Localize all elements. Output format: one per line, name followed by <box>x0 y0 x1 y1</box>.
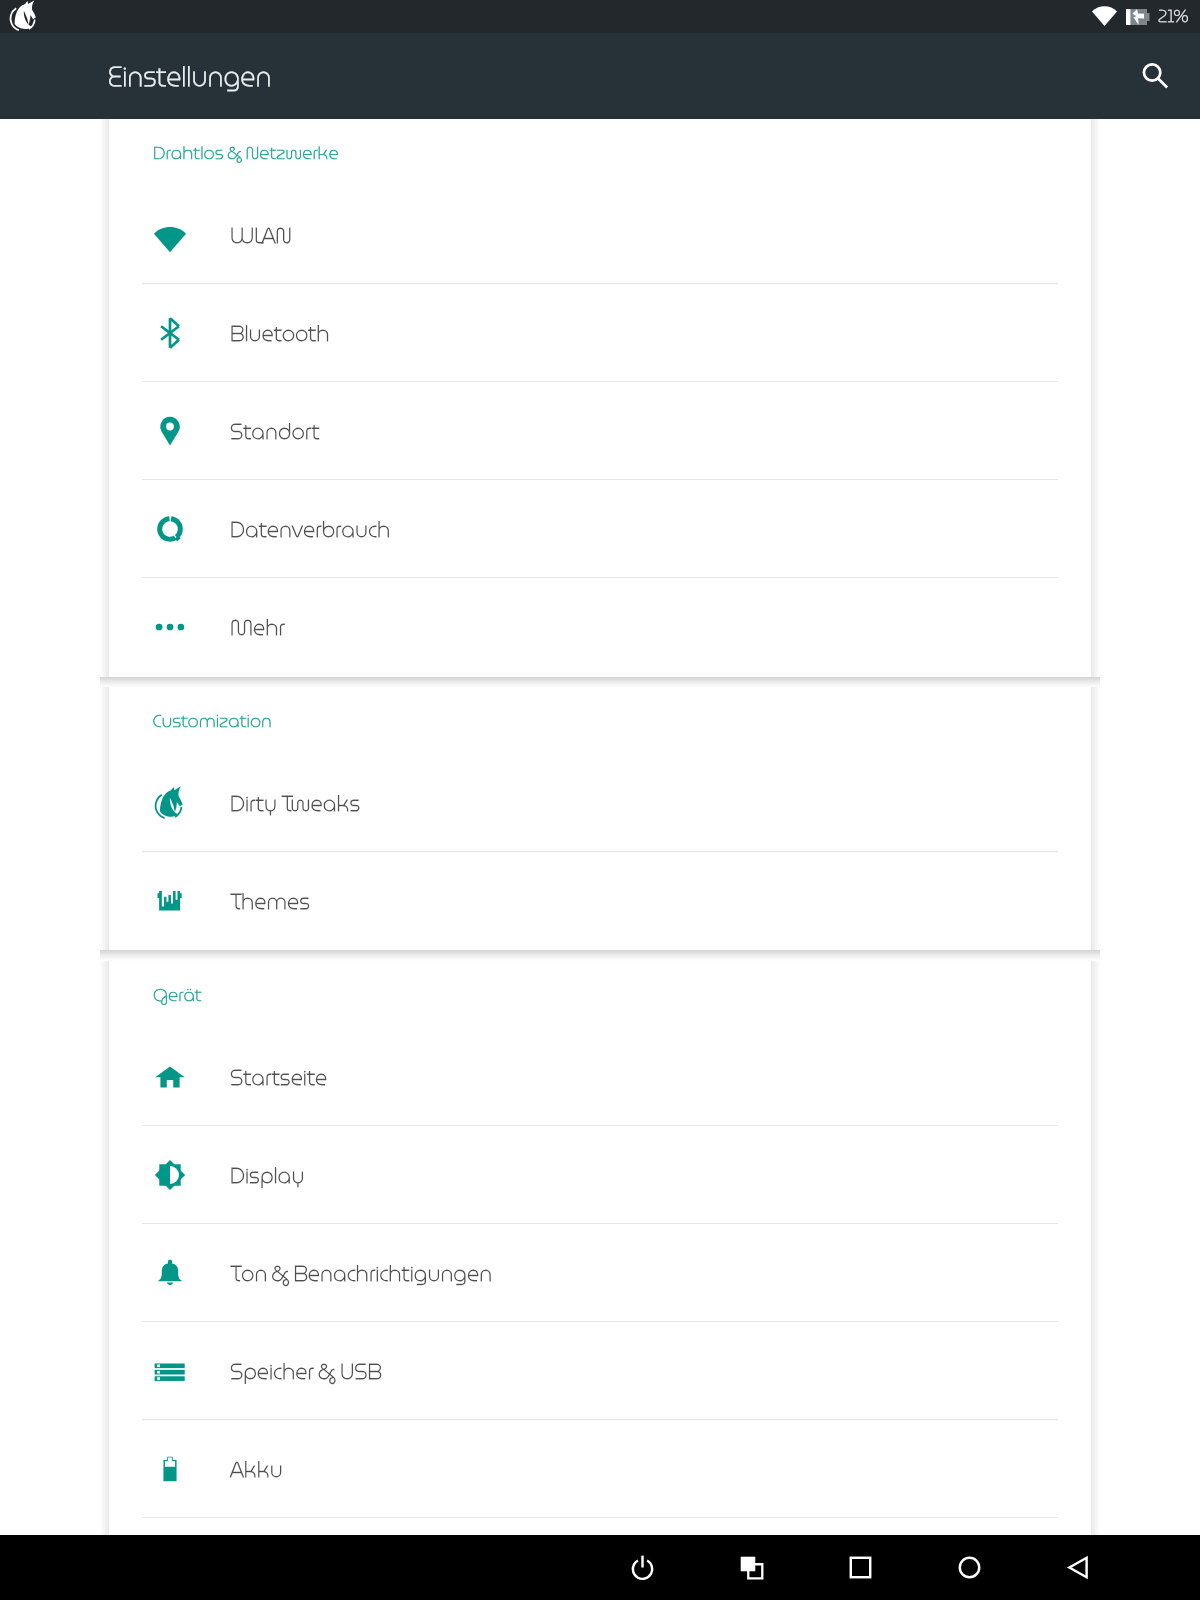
button[interactable]: Display <box>109 1126 1091 1224</box>
staticText: Startseite <box>230 1061 328 1094</box>
staticText: Display <box>230 1159 305 1192</box>
staticText: Gerät <box>153 981 202 1009</box>
staticText: Akku <box>230 1453 283 1486</box>
button[interactable]: Ton & Benachrichtigungen <box>109 1224 1091 1322</box>
button[interactable]: Datenverbrauch <box>109 480 1091 578</box>
button[interactable]: Speicher & USB <box>109 1322 1091 1420</box>
staticText: Customization <box>153 707 272 735</box>
button[interactable]: Startseite <box>109 1028 1091 1126</box>
button[interactable]: Akku <box>109 1420 1091 1518</box>
button[interactable]: Back <box>1024 1535 1133 1600</box>
button[interactable]: Dirty Tweaks <box>109 754 1091 852</box>
staticText: Ton & Benachrichtigungen <box>230 1257 493 1290</box>
staticText: Themes <box>230 885 310 918</box>
button[interactable]: Split screen <box>697 1535 806 1600</box>
staticText: Datenverbrauch <box>230 513 391 546</box>
staticText: Einstellungen <box>108 56 272 97</box>
button[interactable]: WLAN <box>109 186 1091 284</box>
staticText: Drahtlos & Netzwerke <box>153 139 339 167</box>
staticText: Bluetooth <box>230 317 330 350</box>
button[interactable]: Home <box>915 1535 1024 1600</box>
button[interactable]: Bluetooth <box>109 284 1091 382</box>
staticText: Dirty Tweaks <box>230 787 361 820</box>
staticText: 21% <box>1158 3 1189 30</box>
staticText: Mehr <box>230 611 285 644</box>
button[interactable]: Recents <box>806 1535 915 1600</box>
button[interactable]: Standort <box>109 382 1091 480</box>
button[interactable]: Power <box>588 1535 697 1600</box>
button[interactable]: Themes <box>109 852 1091 950</box>
staticText: WLAN <box>230 219 292 252</box>
staticText: Standort <box>230 415 320 448</box>
staticText: Speicher & USB <box>230 1355 382 1388</box>
button[interactable]: Search <box>1127 48 1183 104</box>
button[interactable]: Mehr <box>109 578 1091 676</box>
